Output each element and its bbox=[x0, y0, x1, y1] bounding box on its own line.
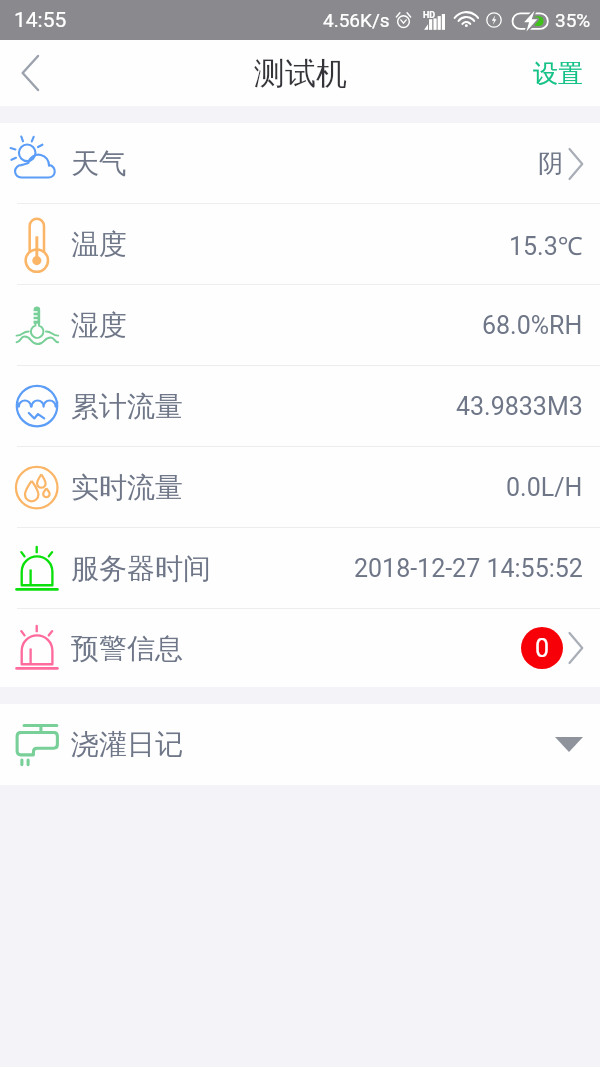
button[interactable]: 温度 bbox=[0, 204, 600, 285]
staticText: 43.9833M3 bbox=[456, 392, 583, 421]
button[interactable]: 设置 bbox=[516, 44, 600, 103]
staticText: 设置 bbox=[533, 58, 583, 89]
button[interactable]: 累计流量 bbox=[0, 366, 600, 447]
staticText: 2018-12-27 14:55:52 bbox=[354, 554, 583, 583]
staticText: 累计流量 bbox=[71, 389, 183, 424]
staticText: 15.3℃ bbox=[509, 228, 583, 262]
button[interactable]: 实时流量 bbox=[0, 447, 600, 528]
button[interactable]: 天气 bbox=[0, 123, 600, 204]
staticText: 实时流量 bbox=[71, 470, 183, 505]
staticText: 68.0%RH bbox=[482, 311, 583, 340]
staticText: 浇灌日记 bbox=[71, 727, 183, 762]
button[interactable]: 预警信息 bbox=[0, 609, 600, 687]
button[interactable]: 服务器时间 bbox=[0, 528, 600, 609]
staticText: 测试机 bbox=[254, 54, 347, 93]
staticText: 阴 bbox=[538, 148, 563, 179]
button[interactable]: Back bbox=[0, 40, 62, 106]
staticText: 服务器时间 bbox=[71, 551, 211, 586]
staticText: 4.56K/s bbox=[323, 9, 390, 31]
staticText: 预警信息 bbox=[71, 631, 183, 666]
staticText: 0.0L/H bbox=[506, 473, 583, 502]
staticText: 0 bbox=[535, 634, 550, 663]
staticText: 天气 bbox=[71, 146, 127, 181]
staticText: 温度 bbox=[71, 227, 127, 262]
button[interactable]: 浇灌日记 bbox=[0, 704, 600, 785]
staticText: 35% bbox=[555, 9, 591, 31]
staticText: 湿度 bbox=[71, 308, 127, 343]
staticText: HD bbox=[423, 10, 436, 21]
button[interactable]: 湿度 bbox=[0, 285, 600, 366]
staticText: 14:55 bbox=[14, 8, 67, 33]
